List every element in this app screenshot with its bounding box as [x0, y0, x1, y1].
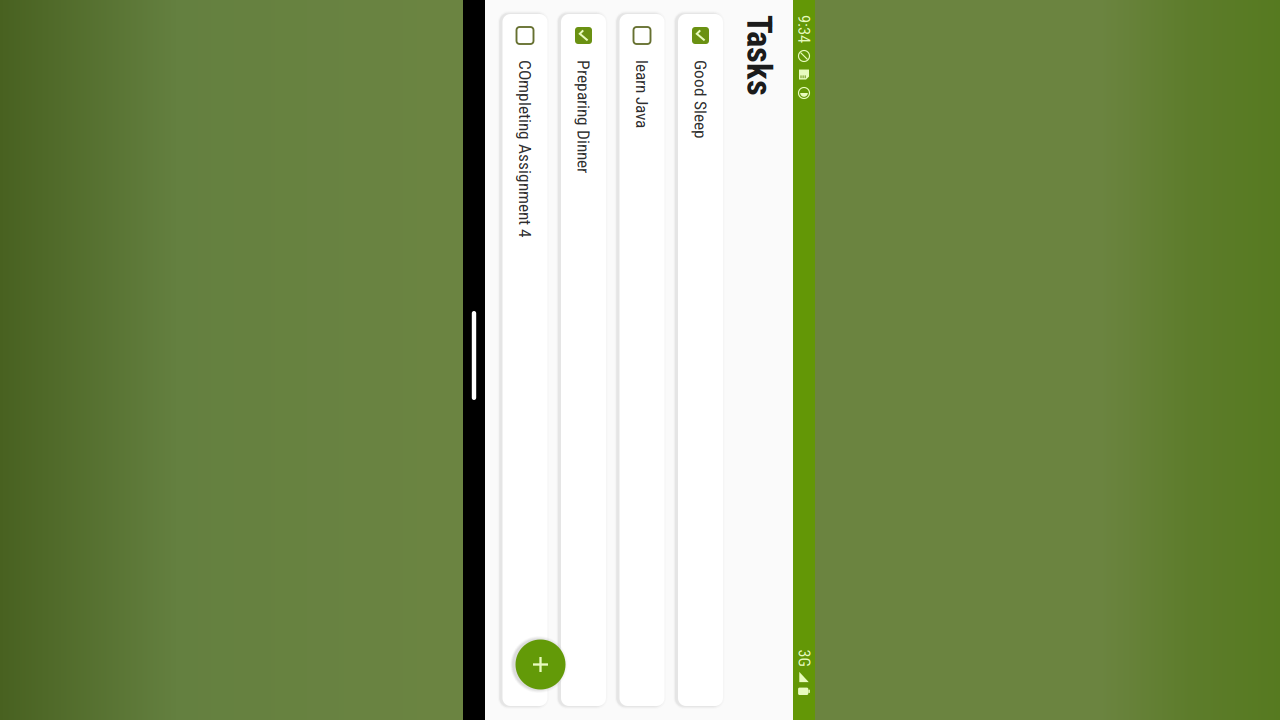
staticText: COmpleting Assignment 4 [339, 464, 517, 484]
button[interactable]: Preparing Dinner [289, 388, 989, 443]
button[interactable]: Good Sleep [289, 271, 989, 326]
button[interactable]: learn Java [289, 329, 989, 384]
button[interactable]: COmpleting Assignment 4 [289, 446, 989, 501]
